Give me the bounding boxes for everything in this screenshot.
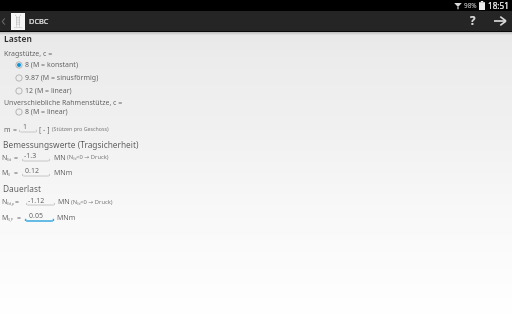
staticText: M0	[2, 168, 11, 178]
staticText: 9.87 (M = sinusförmig)	[25, 73, 99, 83]
staticText: 8 (M = konstant)	[25, 60, 78, 70]
button[interactable]	[13, 71, 113, 84]
staticText: 18:51	[488, 0, 509, 11]
staticText: MNm	[54, 168, 73, 178]
staticText: =	[14, 153, 19, 163]
staticText: Unverschiebliche Rahmenstütze, c =	[4, 98, 123, 108]
button[interactable]	[26, 194, 55, 205]
staticText: NEd,p	[2, 197, 14, 207]
staticText: (Stützen pro Geschoss)	[52, 125, 109, 132]
button[interactable]	[13, 58, 89, 71]
staticText: -1.3	[24, 151, 37, 161]
staticText: MN	[58, 197, 70, 207]
button[interactable]	[19, 122, 37, 132]
staticText: [ - ]	[39, 125, 50, 135]
staticText: M0,P	[2, 213, 14, 223]
staticText: DCBC	[29, 16, 49, 26]
button[interactable]	[13, 84, 85, 97]
staticText: 0.05	[29, 211, 43, 221]
button[interactable]: Help	[459, 11, 487, 31]
staticText: m	[4, 125, 11, 135]
staticText: 8 (M = linear)	[25, 107, 68, 117]
staticText: =	[17, 213, 22, 223]
button[interactable]	[22, 150, 50, 161]
button[interactable]: Next	[487, 11, 512, 31]
button[interactable]	[22, 165, 50, 176]
button[interactable]	[13, 105, 81, 118]
staticText: 98%	[464, 1, 477, 10]
staticText: MN	[54, 153, 66, 163]
staticText: Lasten	[4, 33, 32, 44]
staticText: =	[13, 125, 18, 135]
staticText: 0.12	[25, 166, 39, 176]
staticText: =	[15, 197, 20, 207]
staticText: (NEd<0 → Druck)	[67, 153, 109, 161]
staticText: Bemessungswerte (Tragsicherheit)	[3, 139, 139, 150]
staticText: =	[14, 168, 19, 178]
button[interactable]	[25, 210, 54, 221]
staticText: 1	[23, 122, 28, 132]
button[interactable]: Back	[0, 11, 11, 31]
staticText: -1.12	[28, 196, 45, 206]
staticText: Dauerlast	[3, 183, 41, 194]
staticText: Kragstütze, c =	[4, 49, 53, 59]
staticText: (NEd<0 → Druck)	[71, 198, 113, 206]
staticText: NEd	[2, 153, 12, 163]
staticText: 12 (M = linear)	[25, 86, 72, 96]
staticText: ?	[470, 13, 476, 29]
staticText: MNm	[57, 213, 76, 223]
